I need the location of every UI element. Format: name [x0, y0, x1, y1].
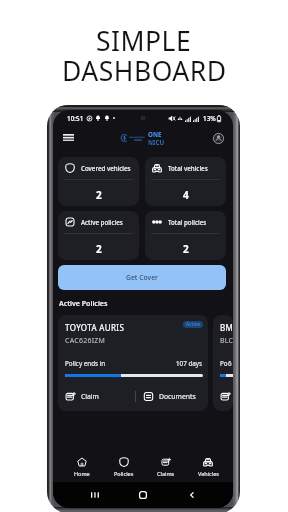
- staticText: Claims: [157, 470, 175, 477]
- staticText: Home: [74, 470, 90, 477]
- staticText: DASHBOARD: [62, 53, 227, 89]
- button[interactable]: Active policies: [58, 211, 139, 260]
- staticText: BLC123XY: [220, 336, 233, 346]
- button[interactable]: Recents: [88, 488, 102, 502]
- staticText: 2: [183, 242, 189, 256]
- staticText: CAC626IZM: [65, 336, 106, 346]
- staticText: 107 days: [176, 359, 203, 368]
- button[interactable]: Total vehicles: [145, 157, 226, 206]
- staticText: TOYOTA AURIS: [65, 322, 125, 333]
- staticText: Documents: [159, 392, 196, 401]
- button[interactable]: Menu: [61, 131, 75, 145]
- staticText: Active Policies: [59, 299, 108, 309]
- button[interactable]: BMW X5: [213, 315, 233, 411]
- button[interactable]: Claim: [220, 389, 233, 403]
- button[interactable]: Covered vehicles: [58, 157, 139, 206]
- staticText: Active: [186, 321, 201, 328]
- staticText: 4: [183, 188, 189, 202]
- staticText: Policy ends in: [220, 359, 228, 368]
- staticText: Get Cover: [126, 273, 158, 282]
- staticText: Total vehicles: [168, 164, 208, 172]
- staticText: Total policies: [168, 218, 207, 226]
- button[interactable]: TOYOTA AURIS: [58, 315, 208, 411]
- staticText: NICU: [148, 138, 165, 146]
- staticText: BMW X5: [220, 322, 233, 333]
- staticText: ONE: [148, 130, 162, 138]
- staticText: Policies: [114, 470, 134, 477]
- staticText: Policy ends in: [65, 359, 106, 368]
- button[interactable]: Claims: [145, 452, 187, 482]
- button[interactable]: Profile: [211, 131, 225, 145]
- button[interactable]: Claim: [65, 389, 99, 403]
- staticText: 10:51: [67, 114, 84, 123]
- staticText: Active policies: [81, 218, 123, 226]
- staticText: Covered vehicles: [81, 164, 131, 172]
- button[interactable]: Policies: [103, 452, 145, 482]
- button[interactable]: Documents: [143, 389, 196, 403]
- staticText: Claim: [81, 392, 99, 401]
- staticText: 2: [96, 188, 102, 202]
- staticText: SIMPLE: [96, 23, 192, 59]
- staticText: Vehicles: [198, 470, 219, 477]
- button[interactable]: Get Cover: [58, 265, 226, 290]
- staticText: 13%: [203, 114, 216, 123]
- button[interactable]: Home: [61, 452, 103, 482]
- button[interactable]: Vehicles: [187, 452, 229, 482]
- button[interactable]: Back: [185, 488, 199, 502]
- button[interactable]: Home: [136, 488, 150, 502]
- staticText: 2: [96, 242, 102, 256]
- button[interactable]: Total policies: [145, 211, 226, 260]
